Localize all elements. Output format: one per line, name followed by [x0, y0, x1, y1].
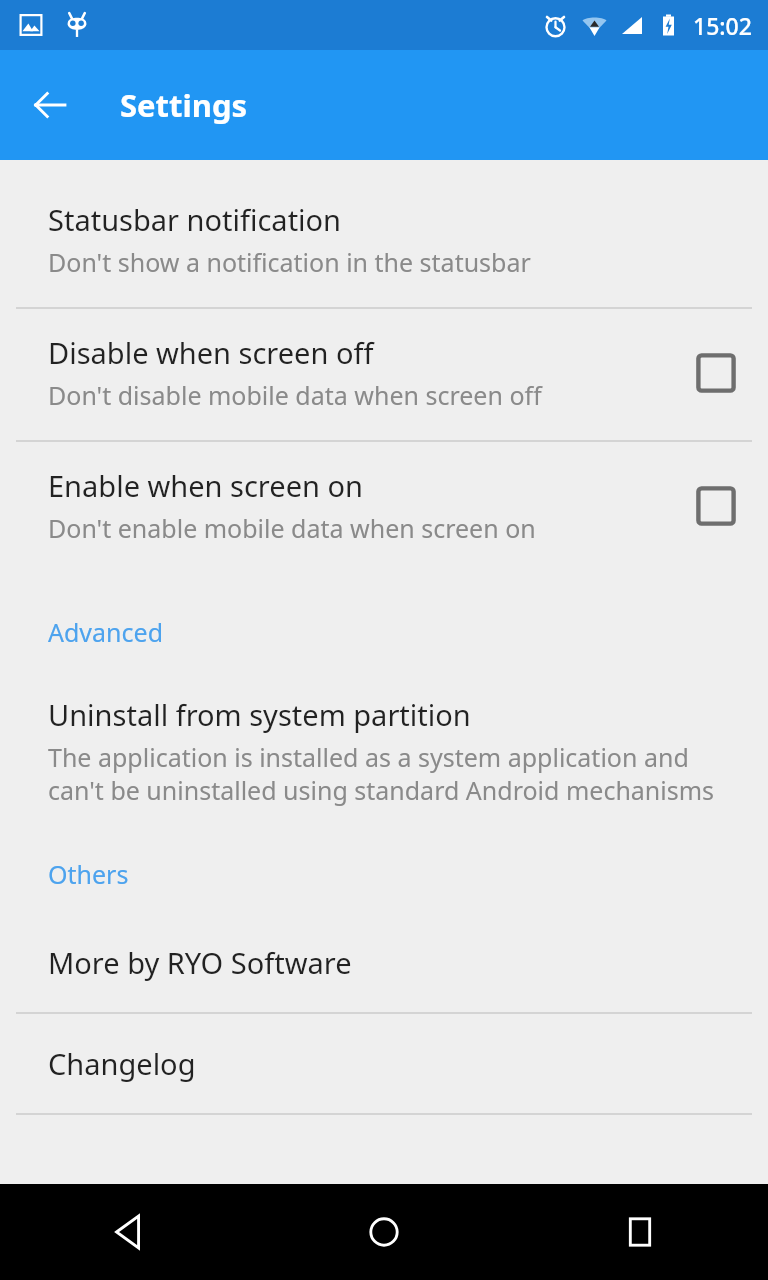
- button[interactable]: Home: [256, 1184, 512, 1280]
- button[interactable]: Changelog: [0, 1014, 768, 1113]
- button[interactable]: Toggle Disable when screen off: [688, 345, 744, 401]
- staticText: 15:02: [693, 10, 752, 41]
- staticText: Disable when screen off: [48, 333, 374, 372]
- button[interactable]: Recents: [512, 1184, 768, 1280]
- staticText: The application is installed as a system…: [48, 740, 744, 807]
- button[interactable]: Uninstall from system partition: [0, 671, 768, 813]
- staticText: Uninstall from system partition: [48, 695, 471, 734]
- button[interactable]: Back: [0, 1184, 256, 1280]
- staticText: Don't enable mobile data when screen on: [48, 511, 536, 545]
- button[interactable]: Back: [22, 77, 78, 133]
- button[interactable]: Disable when screen off: [0, 309, 768, 440]
- staticText: Don't show a notification in the statusb…: [48, 245, 531, 279]
- staticText: Others: [48, 857, 129, 891]
- button[interactable]: Toggle Enable when screen on: [688, 478, 744, 534]
- staticText: Advanced: [48, 615, 164, 649]
- button[interactable]: Statusbar notification: [0, 176, 768, 307]
- staticText: More by RYO Software: [48, 943, 352, 982]
- staticText: Don't disable mobile data when screen of…: [48, 378, 542, 412]
- button[interactable]: Enable when screen on: [0, 442, 768, 573]
- button[interactable]: More by RYO Software: [0, 913, 768, 1012]
- staticText: Settings: [120, 84, 248, 126]
- staticText: Enable when screen on: [48, 466, 363, 505]
- staticText: Changelog: [48, 1044, 196, 1083]
- staticText: Statusbar notification: [48, 200, 342, 239]
